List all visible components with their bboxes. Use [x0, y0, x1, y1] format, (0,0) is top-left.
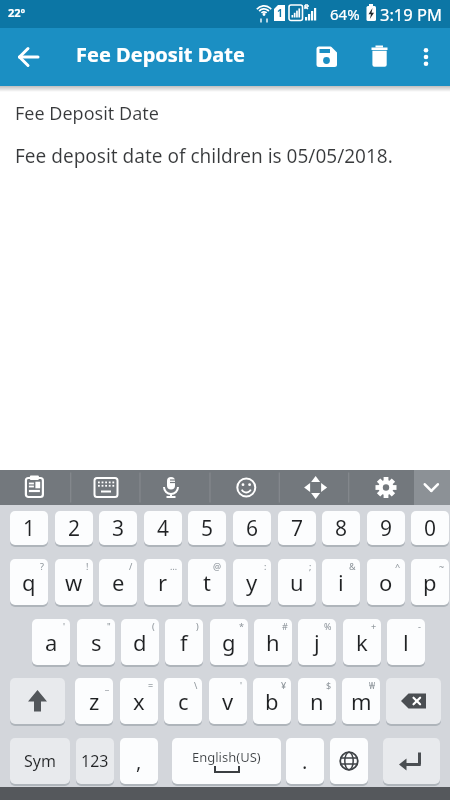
button[interactable]: m: [342, 678, 380, 724]
staticText: g: [222, 627, 236, 657]
staticText: z: [89, 686, 100, 716]
staticText: ): [196, 620, 199, 632]
staticText: c: [178, 686, 189, 716]
button[interactable]: q: [10, 559, 48, 605]
button[interactable]: k: [343, 619, 381, 665]
staticText: Sym: [24, 750, 56, 772]
button[interactable]: [386, 678, 441, 724]
button[interactable]: Sym: [10, 738, 70, 784]
button[interactable]: [408, 38, 444, 74]
button[interactable]: s: [77, 619, 115, 665]
button[interactable]: [0, 470, 69, 505]
button[interactable]: p: [411, 559, 449, 605]
staticText: ~: [439, 560, 445, 572]
button[interactable]: [10, 678, 65, 724]
button[interactable]: 6: [233, 511, 271, 545]
staticText: ': [63, 620, 66, 632]
button[interactable]: [279, 470, 348, 505]
button[interactable]: 7: [278, 511, 316, 545]
button[interactable]: [308, 38, 346, 76]
button[interactable]: v: [209, 678, 247, 724]
staticText: …: [170, 560, 178, 572]
button[interactable]: [209, 470, 278, 505]
staticText: *: [239, 620, 244, 632]
staticText: 6: [246, 514, 259, 543]
staticText: p: [423, 567, 437, 597]
button[interactable]: [349, 470, 418, 505]
button[interactable]: j: [298, 619, 336, 665]
button[interactable]: [10, 38, 48, 76]
button[interactable]: r: [144, 559, 182, 605]
staticText: x: [133, 686, 145, 716]
button[interactable]: 123: [76, 738, 114, 784]
button[interactable]: d: [121, 619, 159, 665]
button[interactable]: 3: [99, 511, 137, 545]
staticText: /: [129, 560, 133, 572]
button[interactable]: y: [233, 559, 271, 605]
staticText: u: [290, 567, 304, 597]
staticText: j: [314, 627, 320, 657]
staticText: Fee Deposit Date: [76, 41, 245, 68]
button[interactable]: f: [165, 619, 203, 665]
button[interactable]: [414, 470, 450, 505]
button[interactable]: t: [188, 559, 226, 605]
button[interactable]: [330, 738, 368, 784]
button[interactable]: 9: [367, 511, 405, 545]
button[interactable]: [383, 738, 440, 784]
button[interactable]: [140, 470, 209, 505]
button[interactable]: 4: [144, 511, 182, 545]
staticText: =: [148, 679, 154, 691]
staticText: b: [265, 686, 279, 716]
button[interactable]: ,: [120, 738, 158, 784]
staticText: v: [222, 686, 234, 716]
button[interactable]: i: [322, 559, 360, 605]
staticText: @: [213, 560, 222, 572]
staticText: %: [324, 620, 332, 632]
button[interactable]: e: [99, 559, 137, 605]
staticText: t: [203, 567, 211, 597]
button[interactable]: 1: [10, 511, 48, 545]
button[interactable]: z: [75, 678, 113, 724]
staticText: \: [194, 679, 198, 691]
staticText: f: [180, 627, 188, 657]
button[interactable]: [360, 38, 398, 76]
staticText: y: [246, 567, 258, 597]
staticText: w: [65, 567, 83, 597]
button[interactable]: 5: [188, 511, 226, 545]
button[interactable]: b: [253, 678, 291, 724]
staticText: r: [158, 567, 168, 597]
staticText: l: [403, 627, 409, 657]
staticText: ₩: [369, 679, 376, 691]
staticText: s: [91, 627, 102, 657]
button[interactable]: .: [286, 738, 324, 784]
button[interactable]: 0: [411, 511, 449, 545]
staticText: English(US): [192, 748, 261, 766]
button[interactable]: u: [278, 559, 316, 605]
button[interactable]: 8: [322, 511, 360, 545]
staticText: 8: [335, 514, 348, 543]
staticText: Fee deposit date of children is 05/05/20…: [15, 143, 393, 169]
staticText: &: [349, 560, 356, 572]
staticText: i: [338, 567, 344, 597]
staticText: 22°: [8, 5, 26, 20]
button[interactable]: l: [387, 619, 425, 665]
staticText: +: [371, 620, 377, 632]
button[interactable]: c: [164, 678, 202, 724]
button[interactable]: w: [55, 559, 93, 605]
staticText: ^: [395, 560, 401, 572]
staticText: ": [107, 620, 111, 632]
staticText: #: [282, 620, 288, 632]
button[interactable]: [70, 470, 139, 505]
button[interactable]: English(US): [172, 738, 281, 784]
button[interactable]: o: [367, 559, 405, 605]
button[interactable]: h: [254, 619, 292, 665]
staticText: e: [112, 567, 125, 597]
staticText: -: [418, 620, 421, 632]
button[interactable]: g: [210, 619, 248, 665]
staticText: 4: [157, 514, 170, 543]
button[interactable]: n: [298, 678, 336, 724]
staticText: 2: [68, 514, 81, 543]
button[interactable]: 2: [55, 511, 93, 545]
button[interactable]: x: [120, 678, 158, 724]
button[interactable]: a: [32, 619, 70, 665]
